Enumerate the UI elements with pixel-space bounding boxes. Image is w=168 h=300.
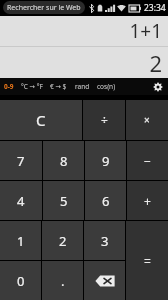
staticText: 0-9 (4, 82, 14, 91)
staticText: 0 (17, 272, 25, 290)
button[interactable]: Settings (148, 78, 168, 95)
staticText: 7 (17, 152, 25, 170)
button[interactable]: − (127, 141, 168, 180)
staticText: . (61, 272, 65, 290)
button[interactable]: 1+1 (0, 16, 168, 46)
button[interactable]: 0 (0, 261, 41, 300)
staticText: 3 (101, 232, 109, 250)
staticText: € → $ (50, 82, 67, 91)
button[interactable]: C (0, 100, 82, 140)
staticText: 5 (60, 192, 68, 210)
button[interactable]: 9 (85, 141, 126, 180)
staticText: 8 (60, 152, 68, 170)
staticText: 1 (17, 232, 25, 250)
button[interactable]: . (42, 261, 83, 300)
staticText: 9 (102, 152, 110, 170)
button[interactable]: 4 (0, 181, 42, 220)
staticText: C (36, 110, 46, 130)
button[interactable]: 2 (42, 221, 83, 260)
button[interactable]: rand (75, 78, 90, 95)
button[interactable]: + (127, 181, 168, 220)
button[interactable]: = (126, 221, 168, 300)
button[interactable]: 3 (84, 221, 125, 260)
staticText: = (144, 253, 151, 269)
button[interactable]: 2 (0, 47, 168, 78)
staticText: 2 (149, 48, 162, 78)
button[interactable]: cos(n) (97, 78, 116, 95)
staticText: ÷ (101, 112, 108, 128)
staticText: 23:34 (144, 2, 166, 14)
button[interactable]: 0-9 (4, 78, 14, 95)
staticText: 2 (59, 232, 67, 250)
button[interactable]: 1 (0, 221, 41, 260)
button[interactable]: € → $ (50, 78, 67, 95)
button[interactable]: 7 (0, 141, 42, 180)
button[interactable]: 5 (43, 181, 84, 220)
button[interactable]: Rechercher sur le Web (3, 1, 85, 14)
staticText: rand (75, 82, 90, 91)
button[interactable]: Backspace (84, 261, 125, 300)
staticText: Rechercher sur le Web (7, 3, 81, 13)
staticText: × (144, 113, 150, 127)
staticText: 6 (102, 192, 110, 210)
button[interactable]: 6 (85, 181, 126, 220)
staticText: − (144, 153, 151, 169)
button[interactable]: × (126, 100, 168, 140)
button[interactable]: ÷ (83, 100, 125, 140)
staticText: 4 (17, 192, 25, 210)
staticText: cos(n) (97, 82, 116, 91)
button[interactable]: 8 (43, 141, 84, 180)
button[interactable]: °C → °F (21, 78, 43, 95)
staticText: °C → °F (21, 82, 43, 91)
staticText: + (144, 193, 151, 209)
staticText: 1+1 (129, 18, 162, 44)
